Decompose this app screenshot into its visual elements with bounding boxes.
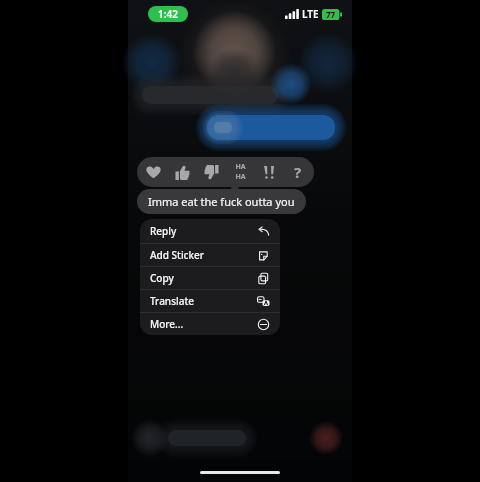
button[interactable]: Like bbox=[169, 159, 195, 185]
staticText: LTE bbox=[302, 7, 319, 21]
staticText: Translate bbox=[150, 294, 194, 308]
button[interactable]: Question bbox=[285, 159, 311, 185]
button[interactable]: Dislike bbox=[198, 159, 224, 185]
button[interactable]: Copy bbox=[140, 267, 280, 289]
staticText: Copy bbox=[150, 271, 174, 285]
staticText: Add Sticker bbox=[150, 248, 205, 262]
staticText: HA bbox=[235, 162, 246, 172]
staticText: Reply bbox=[150, 224, 177, 238]
button[interactable]: More... bbox=[140, 313, 280, 335]
button[interactable]: Haha bbox=[227, 159, 253, 185]
staticText: More... bbox=[150, 317, 184, 331]
staticText: HA bbox=[235, 172, 246, 182]
staticText: 77 bbox=[326, 9, 336, 20]
button[interactable]: Emphasize bbox=[256, 159, 282, 185]
button[interactable]: Imma eat the fuck outta you bbox=[137, 189, 306, 214]
button[interactable]: Add Sticker bbox=[140, 244, 280, 266]
button[interactable]: Translate bbox=[140, 290, 280, 312]
staticText: 1:42 bbox=[158, 7, 178, 21]
staticText: Imma eat the fuck outta you bbox=[148, 194, 295, 209]
button[interactable]: Love bbox=[140, 159, 166, 185]
staticText: ? bbox=[294, 162, 302, 182]
button[interactable]: Reply bbox=[140, 219, 280, 243]
